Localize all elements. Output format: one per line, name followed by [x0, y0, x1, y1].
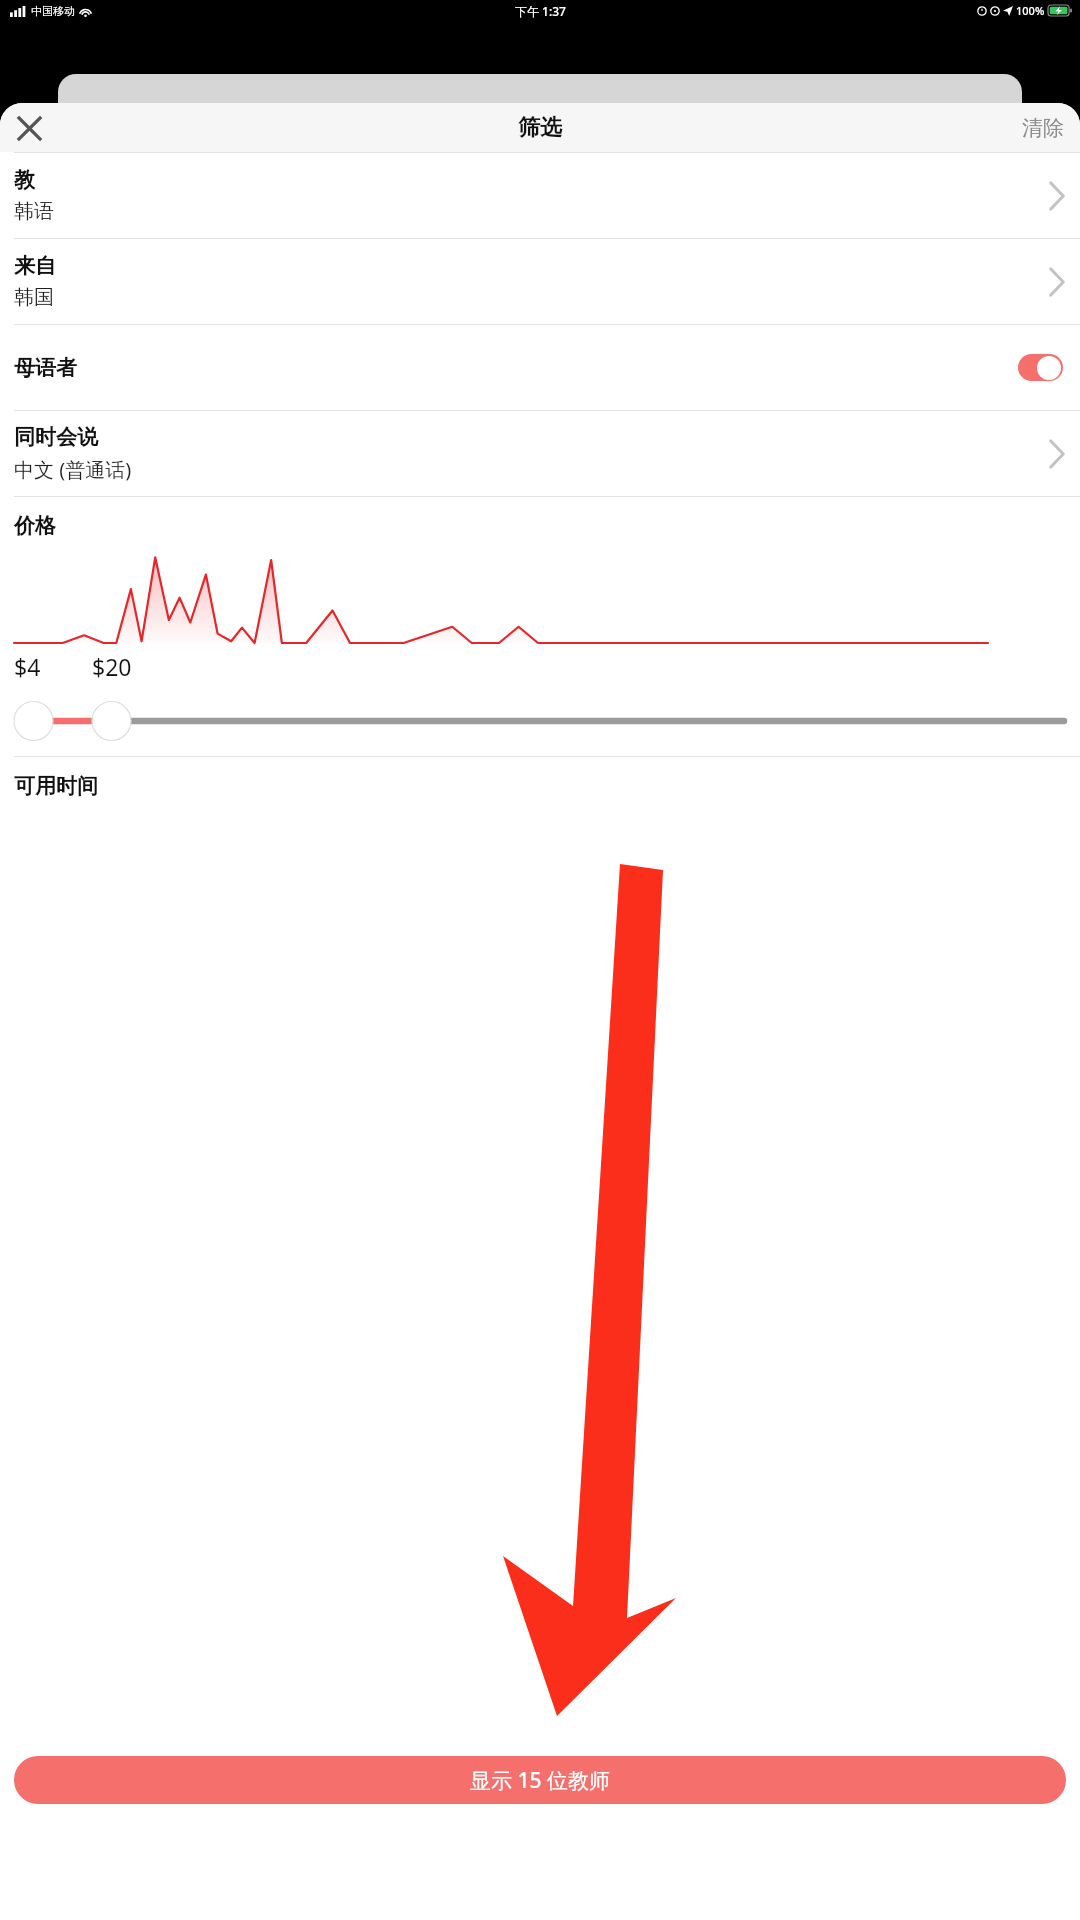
button[interactable]: 来自 — [0, 239, 1080, 324]
staticText: 清除 — [1022, 115, 1064, 141]
button[interactable]: 清除 — [1006, 103, 1080, 152]
staticText: 100% — [1016, 3, 1045, 18]
staticText: 中文 (普通话) — [14, 456, 132, 483]
button[interactable]: 同时会说 — [0, 411, 1080, 496]
button[interactable]: 母语者 — [0, 325, 1080, 410]
staticText: 母语者 — [14, 355, 1018, 381]
staticText: 来自 — [14, 253, 56, 279]
staticText: 中国移动 — [31, 4, 75, 18]
button[interactable]: 显示 15 位教师 — [14, 1756, 1066, 1804]
button[interactable]: 教 — [0, 153, 1080, 238]
button[interactable]: Close — [8, 107, 50, 149]
staticText: 价格 — [14, 513, 56, 539]
staticText: 同时会说 — [14, 424, 98, 450]
staticText: 韩国 — [14, 285, 54, 310]
staticText: 可用时间 — [14, 773, 98, 799]
staticText: $4 — [14, 651, 41, 682]
staticText: 教 — [14, 167, 35, 193]
staticText: 韩语 — [14, 199, 54, 224]
staticText: 筛选 — [518, 114, 562, 142]
staticText: 下午 1:37 — [515, 3, 566, 19]
staticText: $20 — [92, 651, 132, 682]
staticText: 显示 15 位教师 — [470, 1766, 610, 1795]
button[interactable]: Price range slider — [14, 700, 1066, 742]
